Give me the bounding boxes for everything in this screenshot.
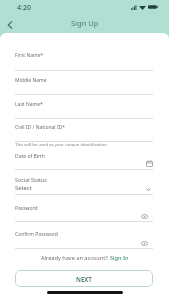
button[interactable]: Show confirm password xyxy=(138,237,150,249)
staticText: 4:20 xyxy=(17,3,31,13)
button[interactable]: Select date xyxy=(143,157,155,169)
staticText: Sign In xyxy=(110,254,129,262)
staticText: NEXT xyxy=(76,275,92,283)
staticText: Last Name* xyxy=(15,101,43,108)
staticText: Select xyxy=(15,184,32,192)
button[interactable]: Back xyxy=(1,16,18,33)
staticText: Sign Up xyxy=(71,18,99,28)
staticText: Confirm Password xyxy=(15,231,58,238)
staticText: Middle Name xyxy=(15,77,47,84)
staticText: Social Status xyxy=(15,176,47,183)
staticText: Date of Birth xyxy=(15,153,45,160)
button[interactable]: Open dropdown xyxy=(142,183,154,195)
staticText: Password xyxy=(15,205,38,212)
staticText: Civil ID / National ID* xyxy=(15,124,65,131)
button[interactable]: Show password xyxy=(138,210,150,222)
staticText: First Name* xyxy=(15,52,44,59)
staticText: Already have an account? xyxy=(41,254,110,262)
button[interactable]: Sign In xyxy=(110,254,129,262)
button[interactable]: NEXT xyxy=(15,270,153,287)
staticText: This will be used as your unique identif… xyxy=(15,141,107,147)
